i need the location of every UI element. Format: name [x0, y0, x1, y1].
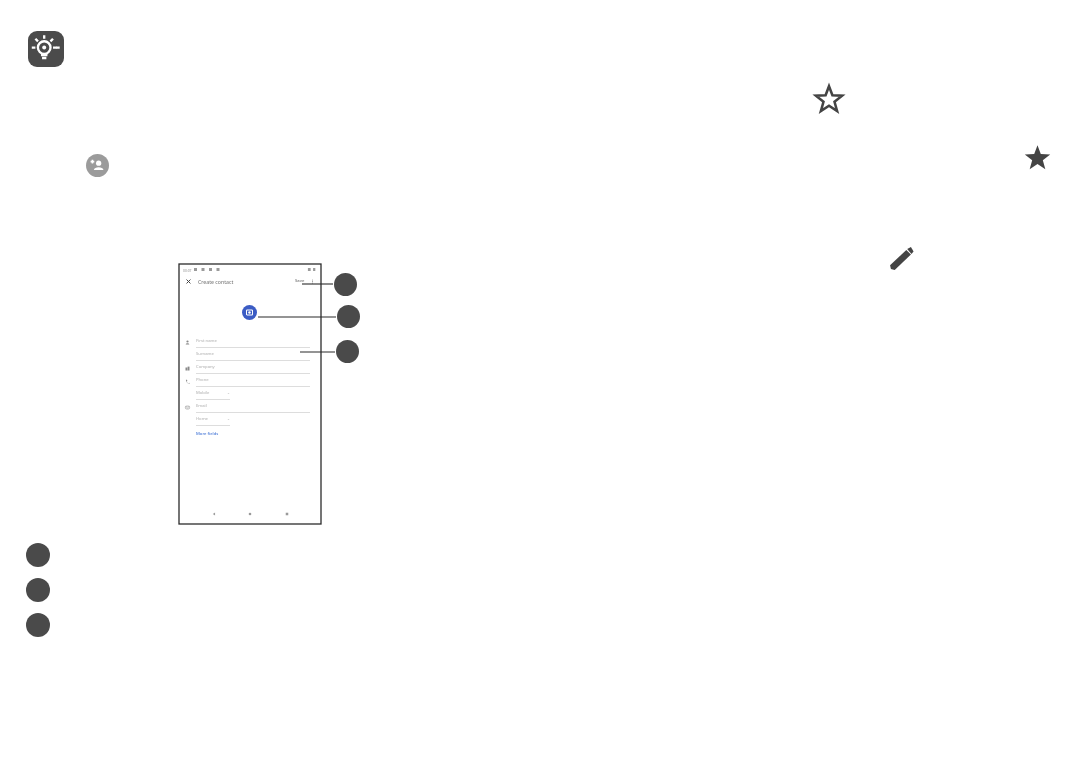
button[interactable]: Home — [247, 511, 253, 517]
button[interactable]: Save — [295, 278, 305, 284]
button[interactable]: Favourite outline — [814, 85, 844, 115]
button[interactable]: Email — [185, 401, 310, 414]
staticText: 00:07 — [183, 268, 192, 272]
staticText: Company — [196, 364, 215, 370]
button[interactable]: Marker 3 — [26, 613, 50, 637]
button[interactable]: More fields — [196, 431, 219, 437]
staticText: Home — [196, 416, 208, 422]
button[interactable]: Add contact — [86, 154, 109, 177]
button[interactable]: First name — [185, 336, 310, 349]
button[interactable]: Mobile — [185, 388, 310, 401]
button[interactable]: Marker 1 — [26, 543, 50, 567]
button[interactable]: Callout 1 — [334, 273, 357, 296]
button[interactable]: App icon — [28, 31, 64, 67]
button[interactable]: Close — [185, 278, 192, 285]
button[interactable]: Home — [185, 414, 310, 427]
staticText: Create contact — [198, 278, 234, 285]
button[interactable]: Edit — [886, 245, 915, 274]
staticText: Surname — [196, 351, 214, 357]
button[interactable]: Company — [185, 362, 310, 375]
staticText: More fields — [196, 431, 219, 437]
button[interactable]: Marker 2 — [26, 578, 50, 602]
button[interactable]: Surname — [185, 349, 310, 362]
staticText: Phone — [196, 377, 209, 383]
button[interactable]: Recents — [284, 511, 290, 517]
button[interactable]: Callout 2 — [337, 305, 360, 328]
button[interactable]: Callout 3 — [336, 340, 359, 363]
button[interactable]: Phone — [185, 375, 310, 388]
staticText: Save — [295, 278, 305, 284]
button[interactable]: Add photo — [242, 305, 257, 320]
staticText: First name — [196, 338, 217, 344]
staticText: Mobile — [196, 390, 210, 396]
button[interactable]: More options — [310, 279, 315, 284]
staticText: Email — [196, 403, 207, 409]
button[interactable]: Favourite — [1023, 144, 1052, 173]
button[interactable]: Back — [211, 511, 217, 517]
